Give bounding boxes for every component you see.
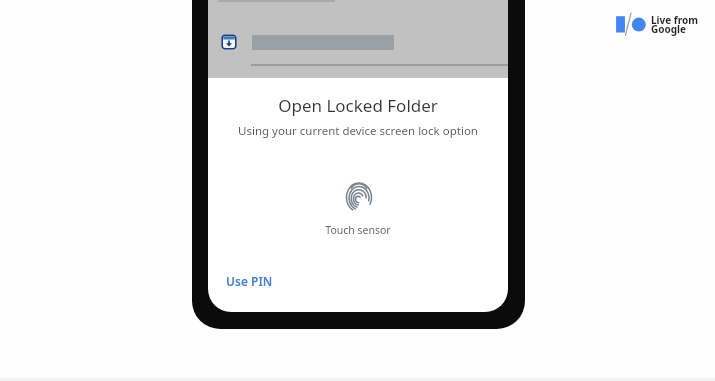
staticText: Use PIN [226,273,273,289]
button[interactable]: Use PIN [218,268,281,294]
button[interactable]: Touch fingerprint sensor [346,179,372,210]
staticText: Using your current device screen lock op… [208,123,508,139]
button[interactable]: Locked Folder list item [208,21,508,63]
staticText: Open Locked Folder [208,94,508,117]
staticText: Live from [651,13,698,27]
staticText: Touch sensor [208,223,508,237]
staticText: Google [651,22,687,36]
